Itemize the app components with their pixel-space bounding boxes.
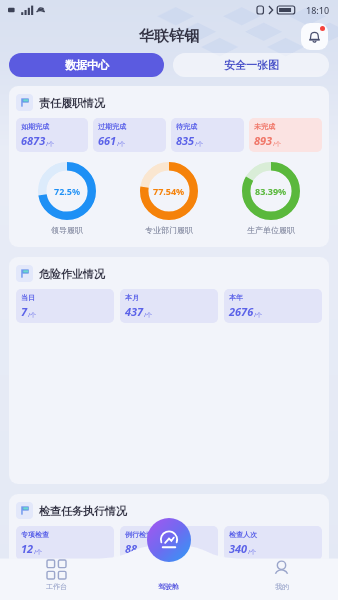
button[interactable]: 我的 xyxy=(225,560,338,600)
staticText: 华联锌铟 xyxy=(139,27,199,46)
staticText: 例行检查 xyxy=(125,530,153,539)
staticText: 12 xyxy=(21,541,34,556)
button[interactable]: 驾驶舱 xyxy=(112,560,225,600)
staticText: 2676 xyxy=(229,304,254,319)
staticText: /个 xyxy=(273,140,282,148)
button[interactable]: 专项检查 xyxy=(16,526,114,560)
staticText: 我的 xyxy=(275,582,289,591)
staticText: 本月 xyxy=(125,293,139,302)
staticText: 待完成 xyxy=(176,122,197,131)
staticText: 437 xyxy=(125,304,144,319)
staticText: /个 xyxy=(46,140,55,148)
button[interactable]: 本年 xyxy=(224,289,322,323)
staticText: 72.5% xyxy=(54,185,81,197)
button[interactable]: 如期完成 xyxy=(16,118,88,152)
staticText: /个 xyxy=(144,311,153,319)
staticText: /个 xyxy=(248,548,257,556)
staticText: 专业部门履职 xyxy=(145,225,193,235)
staticText: 专项检查 xyxy=(21,530,49,539)
button[interactable]: 检查人次 xyxy=(224,526,322,560)
staticText: 过期完成 xyxy=(98,122,126,131)
staticText: /个 xyxy=(34,548,43,556)
staticText: 当日 xyxy=(21,293,35,302)
staticText: 7 xyxy=(21,304,28,319)
button[interactable]: 工作台 xyxy=(0,560,112,600)
staticText: 77.54% xyxy=(153,185,185,197)
staticText: 如期完成 xyxy=(21,122,49,131)
staticText: 责任履职情况 xyxy=(39,96,105,110)
staticText: /个 xyxy=(117,140,126,148)
button[interactable]: 未完成 xyxy=(249,118,322,152)
staticText: 本年 xyxy=(229,293,243,302)
staticText: 生产单位履职 xyxy=(247,225,295,235)
staticText: 18:10 xyxy=(306,4,330,16)
button[interactable]: 待完成 xyxy=(171,118,244,152)
staticText: /个 xyxy=(28,311,37,319)
staticText: 661 xyxy=(98,133,117,148)
staticText: 检查任务执行情况 xyxy=(39,504,127,518)
button[interactable]: 本月 xyxy=(120,289,218,323)
staticText: /个 xyxy=(254,311,263,319)
staticText: 数据中心 xyxy=(65,58,109,72)
button[interactable]: Notifications xyxy=(301,23,328,50)
staticText: 驾驶舱 xyxy=(158,582,179,591)
button[interactable]: 驾驶舱 Cockpit xyxy=(147,518,191,562)
button[interactable]: 过期完成 xyxy=(93,118,166,152)
button[interactable]: 当日 xyxy=(16,289,114,323)
staticText: 检查人次 xyxy=(229,530,257,539)
button[interactable]: 例行检查 xyxy=(120,526,218,560)
staticText: 83.39% xyxy=(255,185,287,197)
staticText: /个 xyxy=(195,140,204,148)
staticText: 工作台 xyxy=(46,582,67,591)
staticText: 危险作业情况 xyxy=(39,267,105,281)
staticText: 未完成 xyxy=(254,122,275,131)
staticText: 340 xyxy=(229,541,248,556)
staticText: 835 xyxy=(176,133,195,148)
staticText: 领导履职 xyxy=(51,225,83,235)
button[interactable]: 数据中心 xyxy=(9,53,164,77)
staticText: 893 xyxy=(254,133,273,148)
staticText: 安全一张图 xyxy=(224,58,279,72)
button[interactable]: 安全一张图 xyxy=(173,53,329,77)
staticText: 88 xyxy=(125,541,138,556)
staticText: 6873 xyxy=(21,133,46,148)
